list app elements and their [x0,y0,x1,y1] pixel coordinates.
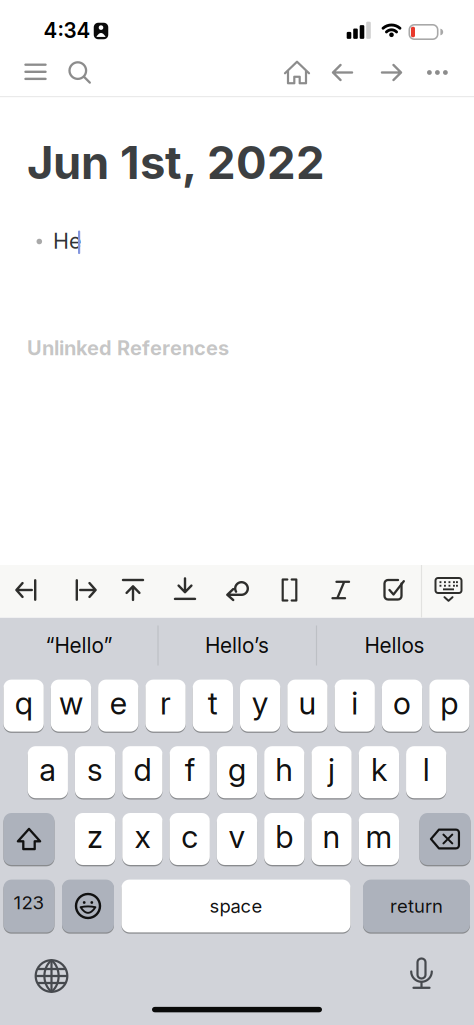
button[interactable]: Dismiss keyboard [428,567,468,611]
staticText: w [59,684,83,722]
button[interactable]: m [359,812,399,866]
button[interactable]: Hello’s [162,622,312,668]
button[interactable]: y [240,679,280,733]
staticText: return [390,895,443,917]
staticText: p [440,684,458,722]
staticText: g [228,751,246,789]
staticText: v [228,818,245,855]
button[interactable]: Dictate [410,957,433,989]
button[interactable]: x [122,812,162,866]
staticText: s [87,751,103,789]
button[interactable]: a [28,745,68,799]
button[interactable]: l [406,745,446,799]
staticText: Hellos [364,633,424,658]
staticText: Unlinked References [27,336,229,360]
button[interactable]: Checkbox [374,568,414,612]
button[interactable]: h [264,745,304,799]
button[interactable]: b [264,812,304,866]
staticText: k [371,751,387,789]
staticText: o [393,684,411,722]
staticText: t [208,684,218,722]
button[interactable]: j [311,745,352,799]
staticText: b [275,818,293,855]
staticText: e [110,684,127,722]
button[interactable]: Menu [23,62,47,82]
button[interactable]: Emoji [62,879,114,933]
button[interactable]: c [169,812,210,866]
button[interactable]: “Hello” [4,622,154,668]
button[interactable]: Next keyboard [34,959,68,993]
staticText: f [185,751,195,789]
button[interactable]: s [75,745,115,799]
button[interactable]: 123 [3,879,54,933]
button[interactable]: n [311,812,352,866]
staticText: r [160,684,171,722]
button[interactable]: z [75,812,115,866]
button[interactable]: e [98,679,138,733]
staticText: i [351,684,358,722]
button[interactable]: t [193,679,233,733]
staticText: z [87,818,103,855]
staticText: y [252,684,269,722]
button[interactable]: Forward [381,65,402,80]
button[interactable]: Home [284,61,309,84]
button[interactable]: Move up [113,568,153,612]
staticText: n [323,818,341,855]
button[interactable]: Brackets [269,568,309,612]
button[interactable]: space [121,879,350,933]
button[interactable]: w [51,679,91,733]
staticText: d [133,751,151,789]
staticText: l [423,751,430,789]
button[interactable]: d [122,745,162,799]
button[interactable]: Search [67,60,91,84]
staticText: 123 [13,891,44,914]
button[interactable]: Italic [321,568,361,612]
button[interactable]: k [359,745,399,799]
button[interactable]: r [145,679,186,733]
button[interactable]: Move down [165,568,205,612]
staticText: h [275,751,293,789]
staticText: j [328,751,335,789]
staticText: c [181,818,198,855]
button[interactable]: Hellos [319,622,469,668]
button[interactable]: Shift [3,812,54,866]
button[interactable]: Outdent [10,568,50,612]
staticText: Jun 1st, 2022 [27,135,325,190]
staticText: x [134,818,150,855]
button[interactable]: Back [332,65,353,80]
button[interactable]: Indent [62,568,102,612]
staticText: u [298,684,316,722]
button[interactable]: Undo [218,568,258,612]
button[interactable]: return [363,879,470,933]
staticText: Hello’s [205,633,269,658]
button[interactable]: f [169,745,210,799]
button[interactable]: v [217,812,257,866]
staticText: m [365,818,392,855]
staticText: 4:34 [43,18,90,43]
button[interactable]: u [287,679,328,733]
button[interactable]: o [382,679,422,733]
button[interactable]: Delete [419,812,470,866]
staticText: q [15,684,33,722]
staticText: He [53,228,81,254]
button[interactable]: q [3,679,44,733]
staticText: space [209,895,262,917]
button[interactable]: More [427,63,448,81]
button[interactable]: g [217,745,257,799]
button[interactable]: i [335,679,375,733]
staticText: “Hello” [45,633,112,658]
button[interactable]: p [429,679,469,733]
staticText: a [39,751,56,789]
